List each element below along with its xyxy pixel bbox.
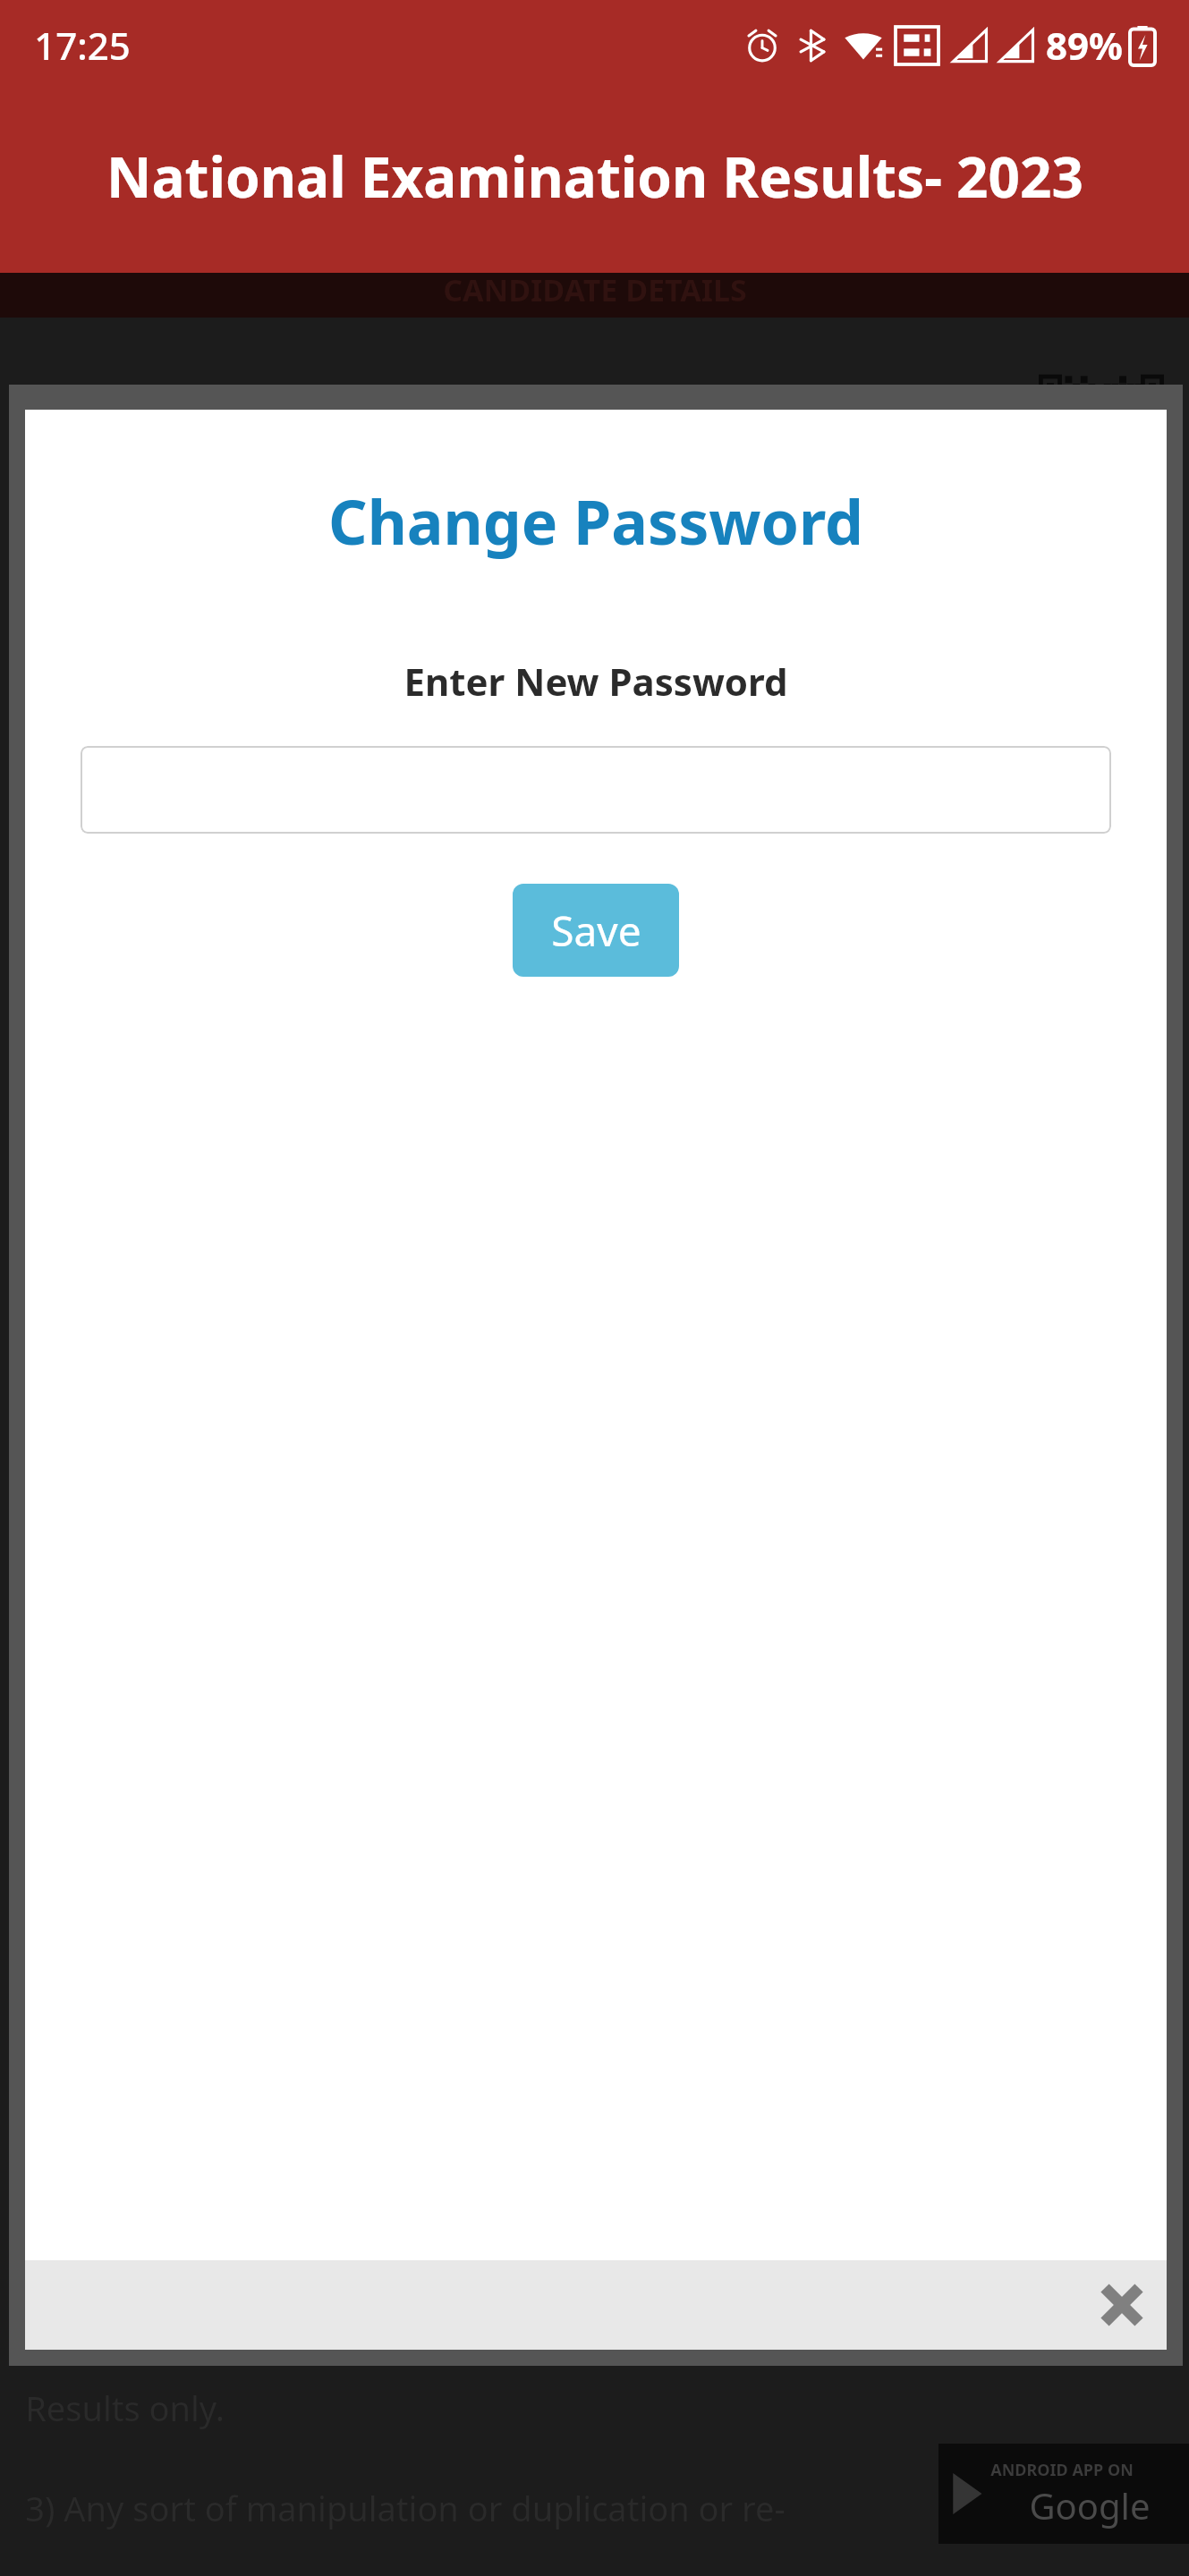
button[interactable]: Save <box>513 884 679 977</box>
staticText: Results only. <box>25 2385 225 2431</box>
staticText: Enter New Password <box>403 656 788 707</box>
button[interactable] <box>81 746 1111 834</box>
staticText: Given <box>25 380 112 424</box>
button[interactable]: Close <box>1077 2260 1167 2350</box>
staticText: Change Password <box>328 479 863 563</box>
staticText: Save <box>551 902 641 959</box>
staticText: Google play <box>990 2481 1189 2529</box>
staticText: education is dependent on the Official N… <box>25 2308 986 2354</box>
staticText: SAMUEL <box>201 380 327 424</box>
staticText: 3) Any sort of manipulation or duplicati… <box>25 2485 786 2531</box>
staticText: 17:25 <box>34 20 131 71</box>
staticText: 89% <box>1046 20 1123 71</box>
staticText: National Examination Results- 2023 <box>106 139 1083 214</box>
staticText: ANDROID APP ON <box>990 2459 1134 2481</box>
staticText: CANDIDATE DETAILS <box>443 269 747 310</box>
